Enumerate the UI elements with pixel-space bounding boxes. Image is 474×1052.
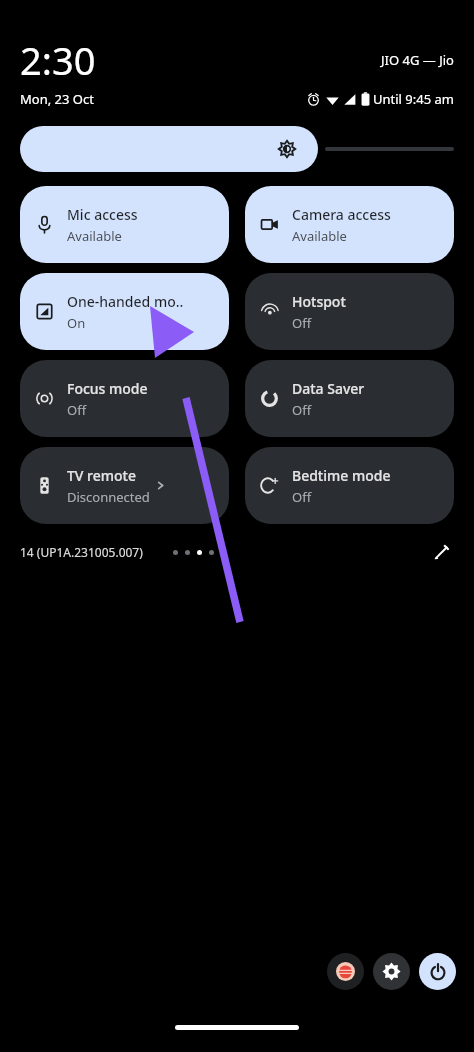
staticText: 14 (UP1A.231005.007): [20, 544, 143, 560]
button[interactable]: Focus mode: [20, 360, 229, 437]
button[interactable]: Settings: [373, 953, 410, 990]
button[interactable]: Data Saver: [245, 360, 454, 437]
staticText: Until 9:45 am: [373, 90, 454, 108]
button[interactable]: One-handed mo..: [20, 273, 229, 350]
staticText: Mon, 23 Oct: [20, 90, 94, 108]
staticText: Off: [292, 314, 312, 332]
staticText: Off: [67, 401, 87, 419]
staticText: Bedtime mode: [292, 466, 391, 485]
staticText: Available: [67, 227, 122, 245]
staticText: JIO 4G — Jio: [381, 51, 454, 69]
staticText: Focus mode: [67, 379, 148, 398]
button[interactable]: Mic access: [20, 186, 229, 263]
staticText: 2:30: [20, 34, 96, 86]
button[interactable]: Power: [419, 953, 456, 990]
button[interactable]: Bedtime mode: [245, 447, 454, 524]
staticText: One-handed mo..: [67, 292, 184, 311]
button[interactable]: Edit tiles: [428, 539, 454, 565]
button[interactable]: Camera access: [245, 186, 454, 263]
staticText: Off: [292, 488, 312, 506]
staticText: Hotspot: [292, 292, 346, 311]
button[interactable]: User account: [327, 953, 364, 990]
staticText: Data Saver: [292, 379, 365, 398]
button[interactable]: Brightness: [20, 126, 318, 172]
staticText: Disconnected: [67, 488, 150, 506]
staticText: Camera access: [292, 205, 391, 224]
staticText: Mic access: [67, 205, 138, 224]
staticText: TV remote: [67, 466, 137, 485]
staticText: On: [67, 314, 86, 332]
staticText: Off: [292, 401, 312, 419]
button[interactable]: TV remote: [20, 447, 229, 524]
button[interactable]: Hotspot: [245, 273, 454, 350]
staticText: Available: [292, 227, 347, 245]
